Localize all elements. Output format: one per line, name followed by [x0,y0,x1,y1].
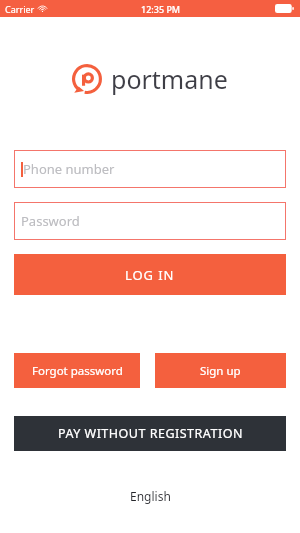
staticText: Sign up [200,363,241,379]
staticText: LOG IN [125,266,175,284]
button[interactable]: Forgot password [14,353,140,388]
button[interactable]: Password [14,202,286,240]
button[interactable]: LOG IN [14,254,286,295]
button[interactable]: Sign up [155,353,286,388]
staticText: Forgot password [32,363,123,379]
button[interactable]: PAY WITHOUT REGISTRATION [14,416,286,451]
staticText: PAY WITHOUT REGISTRATION [58,425,243,442]
staticText: Password [21,212,80,230]
button[interactable]: English [0,484,300,508]
staticText: Phone number [23,160,115,178]
staticText: English [130,488,171,504]
staticText: Carrier [5,3,35,15]
staticText: 12:35 PM [141,3,181,15]
staticText: portmane [111,62,228,96]
button[interactable]: Phone number [14,150,286,188]
